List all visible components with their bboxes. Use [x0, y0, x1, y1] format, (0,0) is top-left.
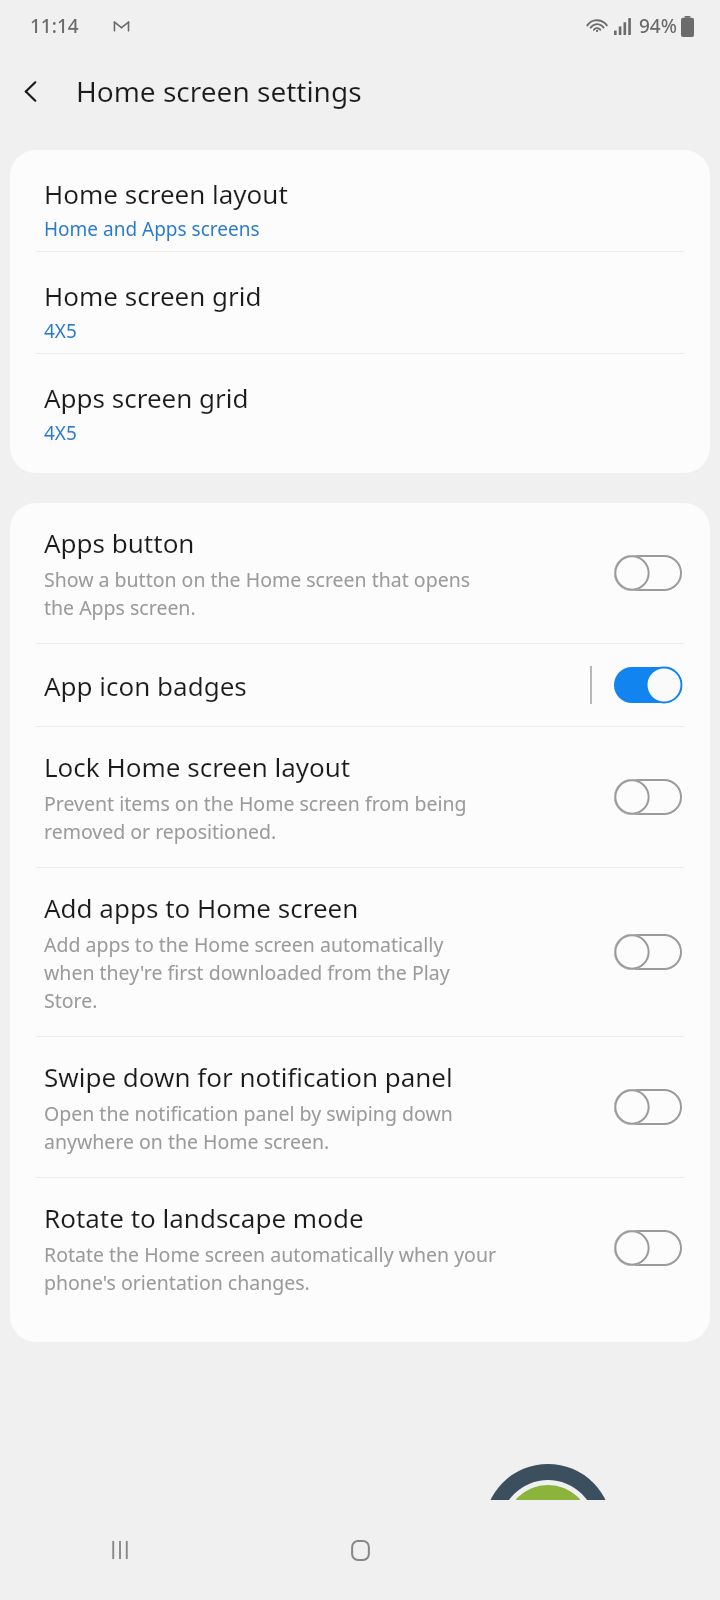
staticText: Apps screen grid: [44, 380, 249, 415]
staticText: Add apps to the Home screen automaticall…: [44, 931, 450, 1014]
staticText: Home screen layout: [44, 176, 288, 211]
button[interactable]: Add apps to Home screen: [10, 868, 710, 1036]
staticText: 4X5: [44, 318, 77, 344]
staticText: Apps button: [44, 525, 195, 560]
button[interactable]: Lock Home screen layout: [10, 727, 710, 867]
staticText: Prevent items on the Home screen from be…: [44, 790, 467, 845]
staticText: Rotate to landscape mode: [44, 1200, 364, 1235]
button[interactable]: Apps screen grid: [10, 354, 710, 455]
staticText: na: [574, 1484, 648, 1568]
staticText: Home and Apps screens: [44, 216, 260, 242]
staticText: Open the notification panel by swiping d…: [44, 1100, 453, 1155]
staticText: Home screen settings: [76, 72, 362, 110]
button[interactable]: Home screen layout: [10, 150, 710, 251]
staticText: App icon badges: [44, 668, 247, 703]
button[interactable]: Switch off: [614, 555, 682, 591]
button[interactable]: Rotate to landscape mode: [10, 1178, 710, 1318]
button[interactable]: Home: [240, 1500, 480, 1600]
button[interactable]: Home screen grid: [10, 252, 710, 353]
button[interactable]: Switch off: [614, 1230, 682, 1266]
button[interactable]: App icon badges: [10, 644, 710, 726]
staticText: 11:14: [30, 13, 79, 39]
staticText: ar: [478, 1484, 539, 1568]
button[interactable]: Switch off: [614, 1089, 682, 1125]
button[interactable]: Back: [0, 60, 62, 122]
button[interactable]: Swipe down for notification panel: [10, 1037, 710, 1177]
staticText: Lock Home screen layout: [44, 749, 351, 784]
button[interactable]: Switch off: [614, 934, 682, 970]
staticText: Add apps to Home screen: [44, 890, 359, 925]
staticText: e: [539, 1484, 574, 1568]
button[interactable]: Recent apps: [0, 1500, 240, 1600]
staticText: 4X5: [44, 420, 77, 446]
staticText: Show a button on the Home screen that op…: [44, 566, 471, 621]
staticText: Home screen grid: [44, 278, 262, 313]
staticText: Swipe down for notification panel: [44, 1059, 453, 1094]
button[interactable]: Apps button: [10, 503, 710, 643]
staticText: 94%: [639, 13, 677, 39]
button[interactable]: Switch off: [614, 779, 682, 815]
button[interactable]: Switch on: [614, 667, 682, 703]
staticText: Rotate the Home screen automatically whe…: [44, 1241, 496, 1296]
